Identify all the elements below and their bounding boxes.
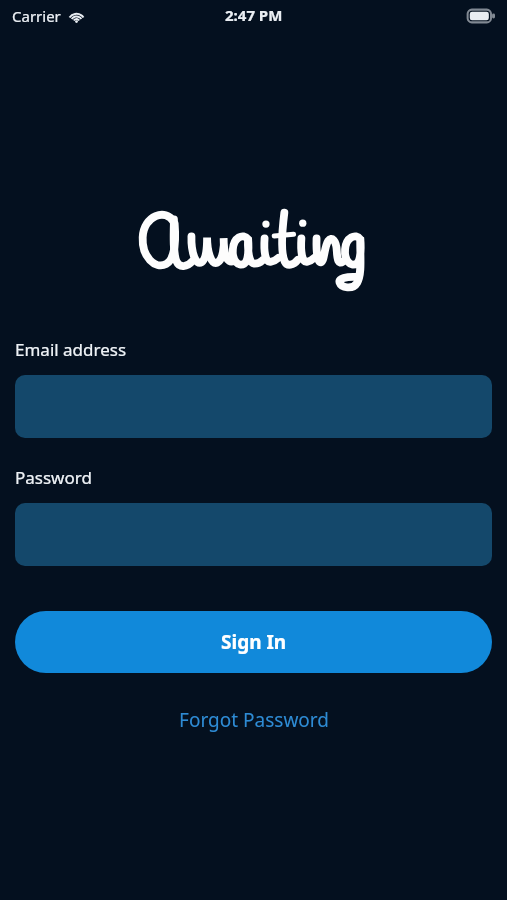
staticText: Carrier <box>12 6 61 26</box>
button[interactable]: Sign In <box>15 611 492 673</box>
button[interactable]: Email address field <box>15 375 492 438</box>
staticText: Forgot Password <box>179 707 329 733</box>
button[interactable]: Password field <box>15 503 492 566</box>
staticText: Password <box>15 466 92 489</box>
staticText: 2:47 PM <box>225 5 283 25</box>
other: Awaiting logo <box>139 196 369 288</box>
button[interactable]: Forgot Password <box>15 703 492 737</box>
staticText: Sign In <box>221 629 287 655</box>
staticText: Email address <box>15 338 127 361</box>
